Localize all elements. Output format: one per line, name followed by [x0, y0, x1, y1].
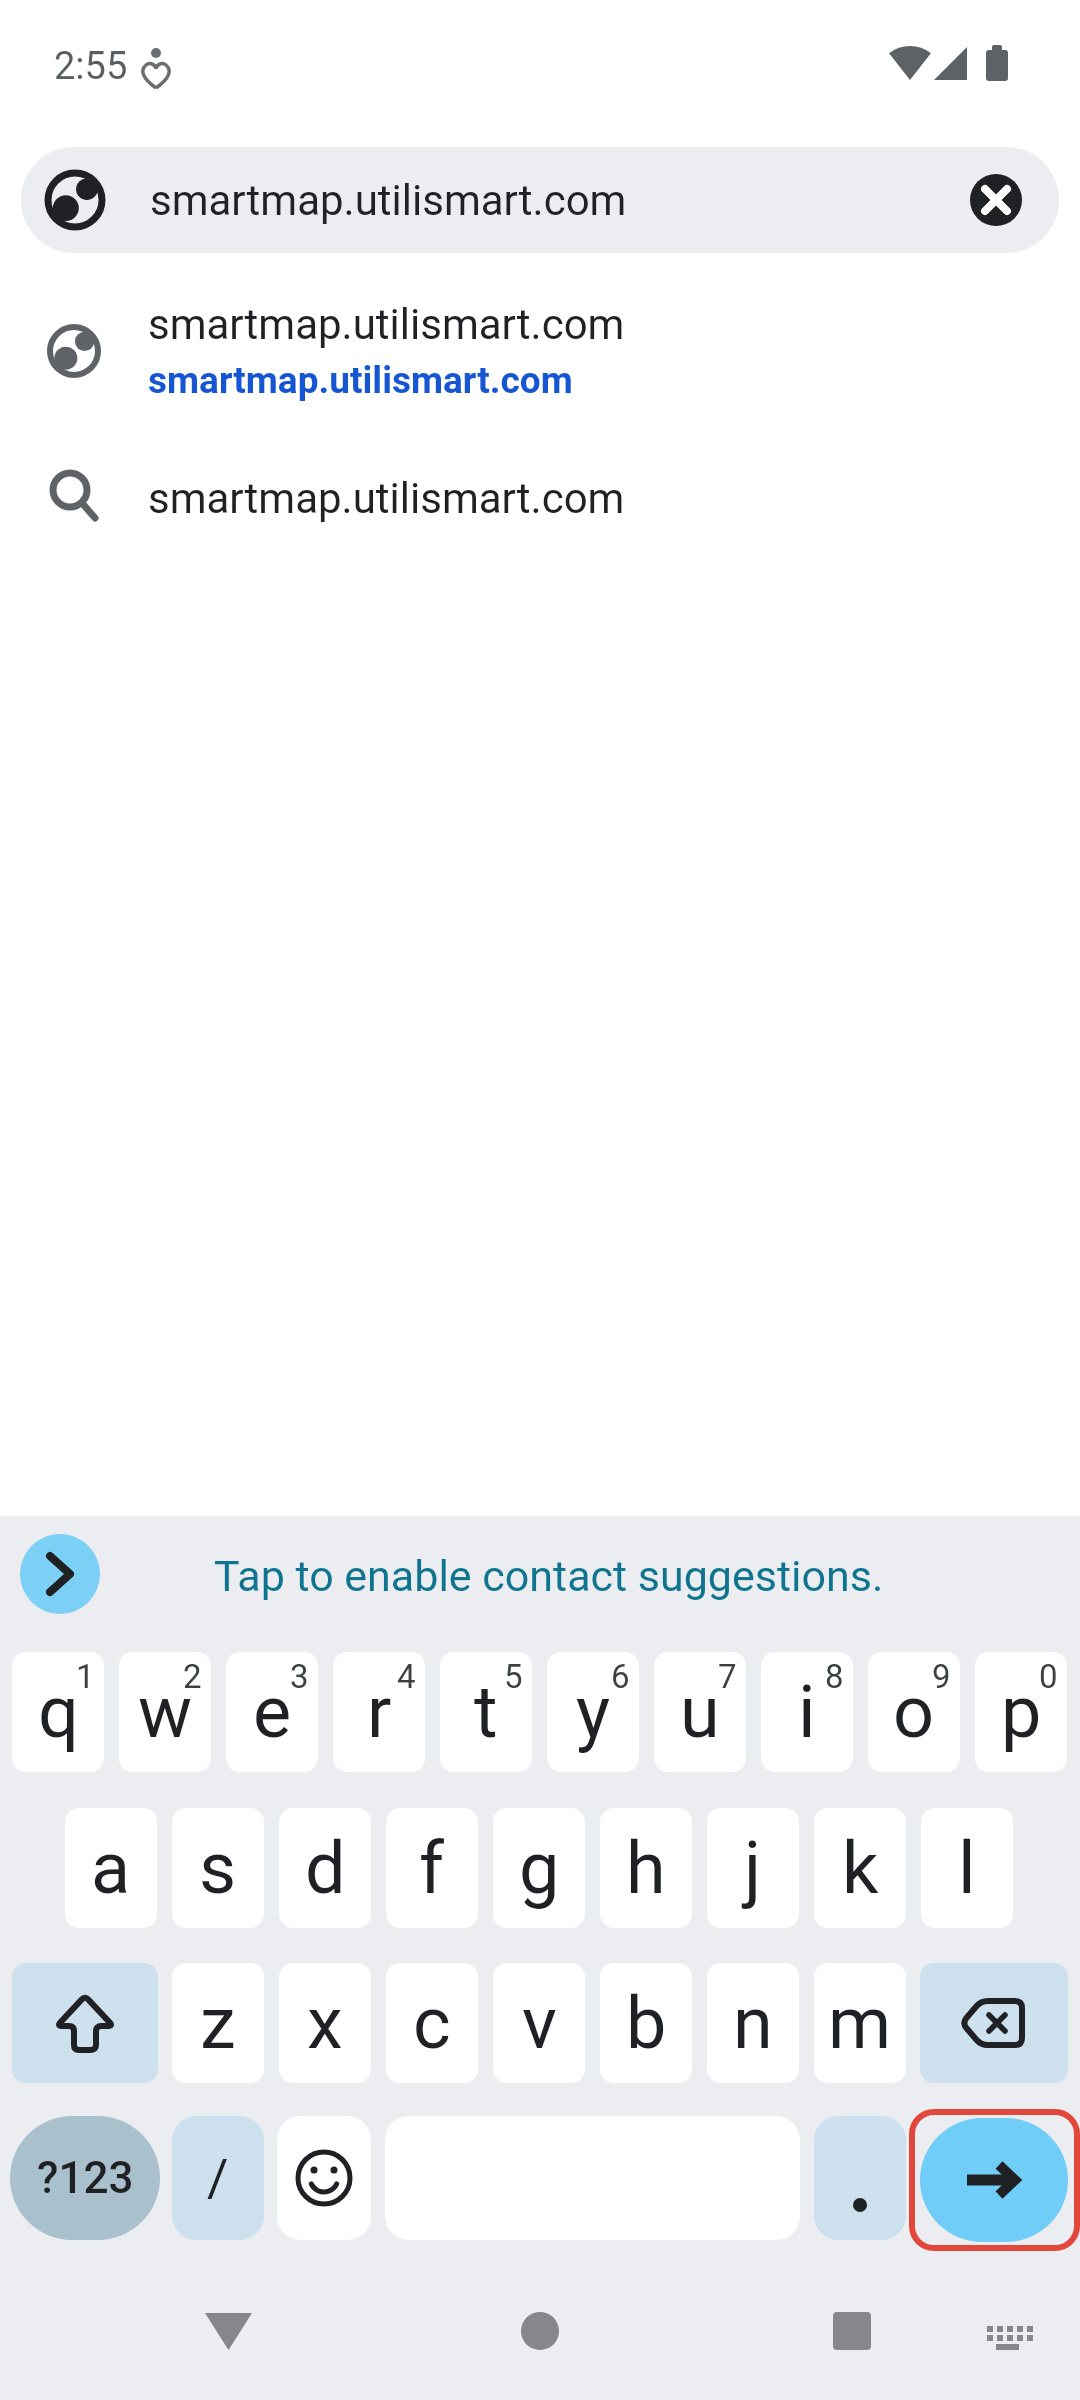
- button[interactable]: p: [975, 1652, 1067, 1772]
- staticText: e: [253, 1670, 292, 1754]
- staticText: 1: [76, 1657, 95, 1696]
- staticText: 4: [397, 1657, 416, 1696]
- staticText: 6: [611, 1657, 630, 1696]
- button[interactable]: r: [333, 1652, 425, 1772]
- staticText: 0: [1039, 1657, 1058, 1696]
- staticText: smartmap.utilismart.com: [148, 300, 625, 349]
- staticText: ?123: [37, 2152, 134, 2204]
- button[interactable]: [12, 1963, 158, 2083]
- button[interactable]: z: [172, 1963, 264, 2083]
- staticText: w: [138, 1670, 193, 1754]
- staticText: v: [522, 1981, 557, 2065]
- staticText: n: [733, 1981, 773, 2065]
- button[interactable]: [500, 2295, 580, 2375]
- staticText: Tap to enable contact suggestions.: [214, 1551, 884, 1601]
- staticText: f: [419, 1826, 445, 1910]
- staticText: smartmap.utilismart.com: [148, 359, 573, 402]
- staticText: h: [626, 1826, 666, 1910]
- staticText: a: [91, 1826, 131, 1910]
- button[interactable]: w: [119, 1652, 211, 1772]
- staticText: 3: [290, 1657, 309, 1696]
- staticText: g: [519, 1826, 560, 1910]
- button[interactable]: d: [279, 1808, 371, 1928]
- button[interactable]: m: [814, 1963, 906, 2083]
- button[interactable]: [20, 1534, 100, 1614]
- button[interactable]: b: [600, 1963, 692, 2083]
- staticText: u: [680, 1670, 720, 1754]
- button[interactable]: t: [440, 1652, 532, 1772]
- button[interactable]: g: [493, 1808, 585, 1928]
- staticText: smartmap.utilismart.com: [148, 474, 625, 523]
- staticText: 9: [932, 1657, 951, 1696]
- button[interactable]: [920, 1963, 1068, 2083]
- button[interactable]: /: [172, 2116, 264, 2240]
- staticText: /: [207, 2148, 229, 2209]
- staticText: r: [367, 1670, 392, 1754]
- button[interactable]: i: [761, 1652, 853, 1772]
- staticText: 5: [504, 1657, 523, 1696]
- button[interactable]: [0, 445, 1080, 555]
- staticText: m: [828, 1981, 892, 2065]
- button[interactable]: f: [386, 1808, 478, 1928]
- staticText: o: [893, 1670, 935, 1754]
- button[interactable]: [21, 147, 1059, 253]
- button[interactable]: [975, 2300, 1039, 2364]
- staticText: k: [842, 1826, 879, 1910]
- staticText: y: [576, 1670, 611, 1754]
- button[interactable]: [190, 2295, 270, 2375]
- button[interactable]: u: [654, 1652, 746, 1772]
- button[interactable]: v: [493, 1963, 585, 2083]
- button[interactable]: a: [65, 1808, 157, 1928]
- staticText: d: [305, 1826, 346, 1910]
- button[interactable]: e: [226, 1652, 318, 1772]
- staticText: z: [200, 1981, 236, 2065]
- staticText: t: [474, 1670, 498, 1754]
- button[interactable]: n: [707, 1963, 799, 2083]
- button[interactable]: y: [547, 1652, 639, 1772]
- staticText: x: [307, 1981, 343, 2065]
- staticText: j: [744, 1826, 762, 1910]
- button[interactable]: k: [814, 1808, 906, 1928]
- button[interactable]: [814, 2116, 906, 2240]
- staticText: smartmap.utilismart.com: [150, 176, 627, 225]
- button[interactable]: s: [172, 1808, 264, 1928]
- button[interactable]: x: [279, 1963, 371, 2083]
- staticText: 7: [718, 1657, 737, 1696]
- staticText: 2: [183, 1657, 202, 1696]
- button[interactable]: l: [921, 1808, 1013, 1928]
- button[interactable]: j: [707, 1808, 799, 1928]
- button[interactable]: o: [868, 1652, 960, 1772]
- button[interactable]: [277, 2116, 371, 2240]
- button[interactable]: ?123: [10, 2116, 160, 2240]
- staticText: i: [798, 1670, 816, 1754]
- button[interactable]: h: [600, 1808, 692, 1928]
- staticText: q: [38, 1670, 79, 1754]
- staticText: p: [1001, 1670, 1042, 1754]
- button[interactable]: [920, 2118, 1068, 2242]
- staticText: 8: [825, 1657, 844, 1696]
- button[interactable]: [0, 292, 1080, 422]
- button[interactable]: q: [12, 1652, 104, 1772]
- staticText: s: [199, 1826, 237, 1910]
- button[interactable]: [812, 2295, 892, 2375]
- staticText: c: [413, 1981, 451, 2065]
- button[interactable]: c: [386, 1963, 478, 2083]
- staticText: l: [958, 1826, 976, 1910]
- staticText: b: [626, 1981, 667, 2065]
- staticText: 2:55: [54, 44, 128, 89]
